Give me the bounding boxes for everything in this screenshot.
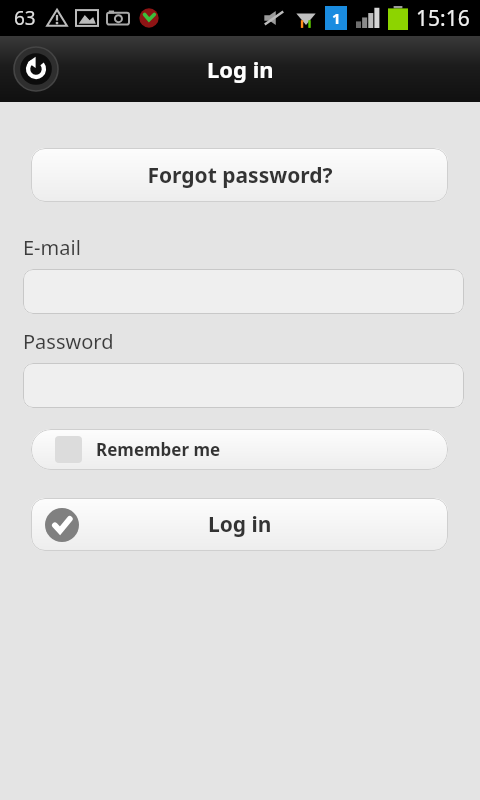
staticText: Log in: [208, 510, 272, 539]
staticText: E-mail: [23, 234, 81, 261]
staticText: Remember me: [96, 438, 221, 461]
staticText: Password: [23, 328, 114, 355]
staticText: Forgot password?: [147, 161, 333, 190]
staticText: 63: [14, 5, 36, 31]
staticText: 15:16: [416, 4, 470, 33]
button[interactable]: Remember me: [31, 429, 448, 470]
button[interactable]: [23, 363, 464, 408]
staticText: Log in: [207, 54, 274, 84]
button[interactable]: [23, 269, 464, 314]
button[interactable]: Back: [14, 47, 58, 91]
button[interactable]: Log in: [31, 498, 448, 551]
button[interactable]: Forgot password?: [31, 148, 448, 202]
staticText: 1: [332, 8, 341, 28]
